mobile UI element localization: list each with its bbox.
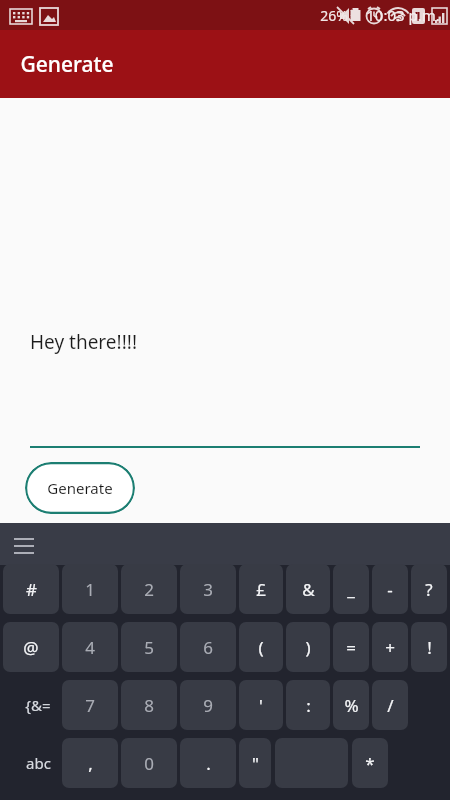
button[interactable]: & (286, 564, 330, 614)
button[interactable]: - (372, 564, 408, 614)
staticText: 0 (144, 752, 154, 775)
button[interactable]: * (352, 738, 388, 788)
staticText: : (306, 694, 311, 717)
staticText: ) (305, 636, 311, 659)
staticText: £ (256, 578, 266, 601)
button[interactable]: {&= (10, 680, 66, 730)
button[interactable]: Keyboard menu (4, 529, 46, 561)
staticText: = (346, 636, 356, 659)
staticText: ( (258, 636, 264, 659)
staticText: 1 (85, 578, 95, 601)
button[interactable]: 1 (62, 564, 118, 614)
button[interactable]: ? (411, 564, 447, 614)
button[interactable]: £ (239, 564, 283, 614)
button[interactable]: 9 (180, 680, 236, 730)
staticText: / (387, 694, 394, 717)
staticText: - (387, 578, 393, 601)
button[interactable]: 2 (121, 564, 177, 614)
staticText: 4 (85, 636, 95, 659)
staticText: 7 (85, 694, 95, 717)
staticText: abc (26, 753, 51, 773)
staticText: {&= (25, 695, 51, 715)
staticText: ' (259, 694, 263, 717)
staticText: . (206, 752, 211, 775)
button[interactable]: @ (3, 622, 59, 672)
button[interactable]: 8 (121, 680, 177, 730)
button[interactable]: " (239, 738, 271, 788)
staticText: ! (427, 636, 432, 659)
button[interactable]: = (333, 622, 369, 672)
button[interactable]: ) (286, 622, 330, 672)
staticText: 6 (203, 636, 213, 659)
staticText: @ (23, 636, 39, 659)
staticText: ? (425, 578, 433, 601)
button[interactable]: 4 (62, 622, 118, 672)
button[interactable]: 3 (180, 564, 236, 614)
button[interactable]: . (180, 738, 236, 788)
staticText: & (302, 578, 315, 601)
staticText: 8 (144, 694, 154, 717)
staticText: " (252, 752, 259, 775)
staticText: 26% (320, 6, 348, 25)
button[interactable]: 6 (180, 622, 236, 672)
staticText: , (88, 752, 93, 775)
staticText: 9 (203, 694, 213, 717)
button[interactable]: ' (239, 680, 283, 730)
staticText: Generate (20, 50, 114, 79)
button[interactable]: ! (411, 622, 447, 672)
button[interactable]: 0 (121, 738, 177, 788)
staticText: 5 (144, 636, 154, 659)
staticText: Hey there!!!! (30, 329, 137, 355)
staticText: + (385, 636, 395, 659)
staticText: 2 (144, 578, 154, 601)
button[interactable]: 5 (121, 622, 177, 672)
staticText: Generate (47, 478, 113, 498)
button[interactable]: Generate (25, 462, 135, 514)
button[interactable]: ( (239, 622, 283, 672)
staticText: 3 (203, 578, 213, 601)
staticText: # (26, 578, 37, 601)
button[interactable]: abc (10, 738, 66, 788)
button[interactable]: / (372, 680, 408, 730)
button[interactable]: : (286, 680, 330, 730)
staticText: 10:03 p.m. (366, 5, 440, 25)
button[interactable]: _ (333, 564, 369, 614)
button[interactable]: + (372, 622, 408, 672)
button[interactable]: # (3, 564, 59, 614)
staticText: % (344, 694, 359, 717)
button[interactable]: , (62, 738, 118, 788)
button[interactable]: % (333, 680, 369, 730)
staticText: * (365, 752, 375, 775)
button[interactable]: 7 (62, 680, 118, 730)
staticText: _ (347, 578, 355, 601)
